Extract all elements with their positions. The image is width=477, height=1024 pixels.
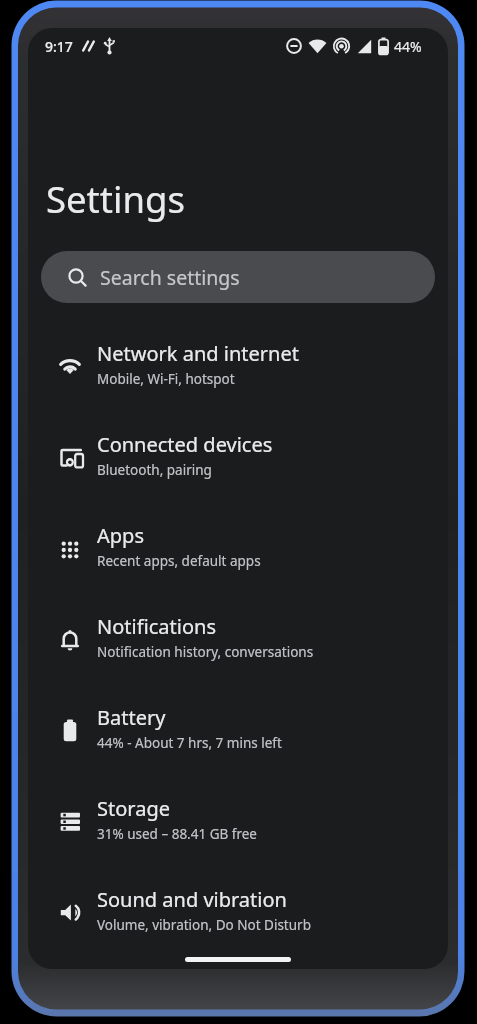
staticText: Bluetooth, pairing — [97, 461, 212, 479]
staticText: 44% - About 7 hrs, 7 mins left — [97, 734, 282, 752]
staticText: 9:17 — [45, 37, 73, 56]
staticText: Recent apps, default apps — [97, 552, 261, 570]
staticText: Volume, vibration, Do Not Disturb — [97, 916, 311, 934]
staticText: Battery — [97, 704, 166, 731]
staticText: Notifications — [97, 613, 216, 640]
staticText: Mobile, Wi-Fi, hotspot — [97, 370, 235, 388]
staticText: Notification history, conversations — [97, 643, 314, 661]
staticText: Settings — [46, 174, 185, 224]
staticText: 31% used – 88.41 GB free — [97, 825, 257, 843]
staticText: Sound and vibration — [97, 886, 287, 913]
staticText: Network and internet — [97, 340, 299, 367]
staticText: Storage — [97, 795, 170, 822]
staticText: 44% — [394, 37, 422, 56]
staticText: Search settings — [100, 264, 240, 291]
staticText: Apps — [97, 522, 144, 549]
staticText: Connected devices — [97, 431, 273, 458]
